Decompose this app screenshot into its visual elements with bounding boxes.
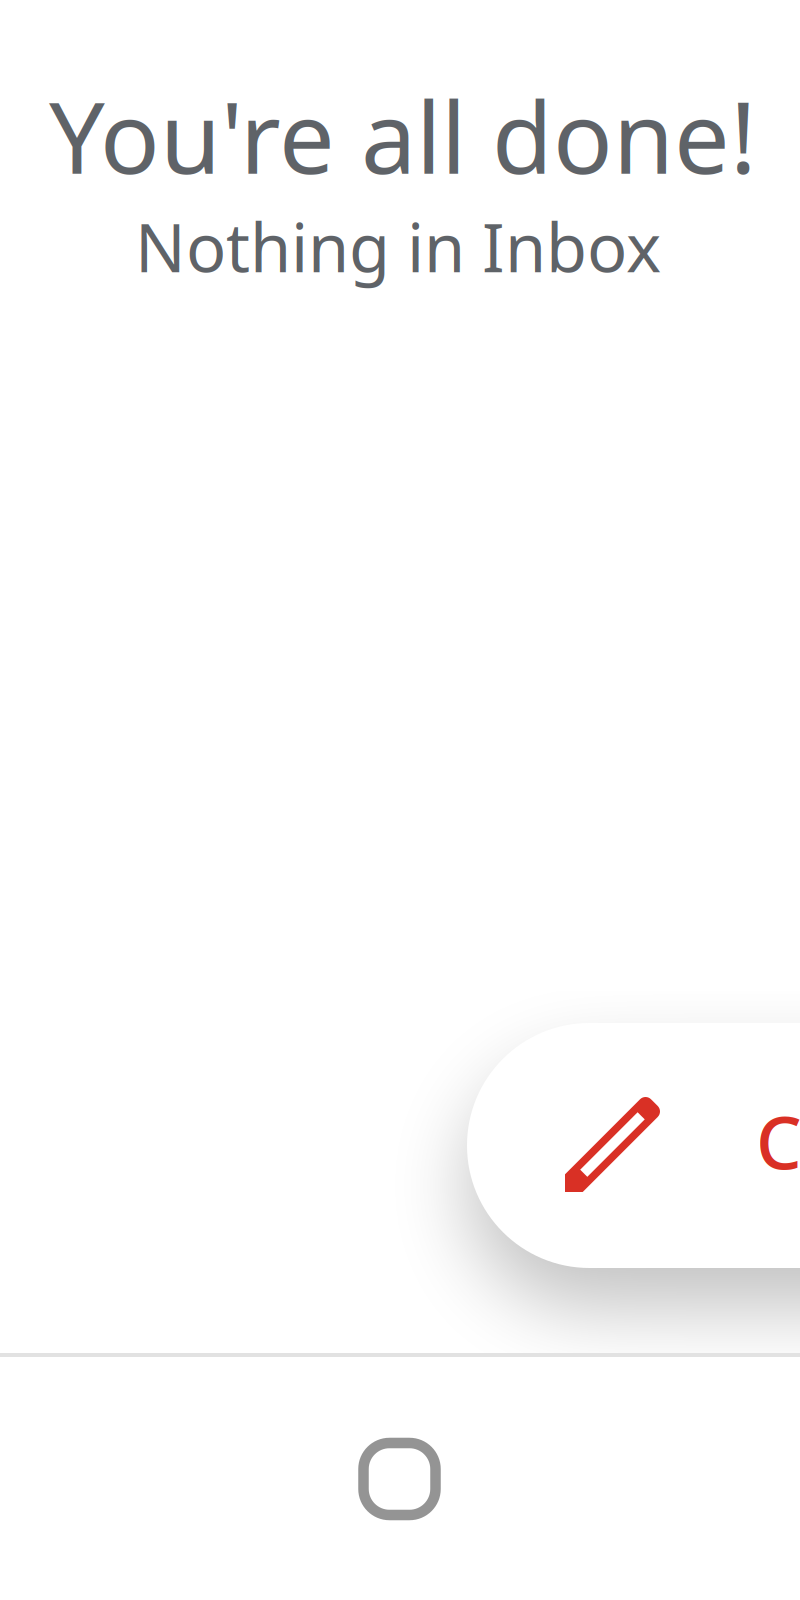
staticText: You're all done! [49, 70, 757, 201]
staticText: Nothing in Inbox [135, 202, 661, 290]
button[interactable]: Compose [467, 1023, 800, 1268]
staticText: Compose [756, 1094, 800, 1189]
button[interactable]: Overview [319, 1399, 479, 1559]
